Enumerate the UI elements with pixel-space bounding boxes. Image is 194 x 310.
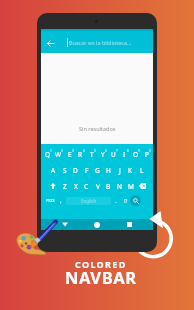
staticText: ?123 (46, 198, 55, 203)
staticText: English (81, 198, 97, 204)
staticText: X (74, 182, 78, 191)
button[interactable]: E (64, 148, 75, 160)
button[interactable]: Y (97, 148, 108, 160)
staticText: 4 (83, 149, 85, 153)
staticText: 0 (149, 149, 151, 153)
button[interactable]: Back (44, 37, 56, 49)
staticText: K (128, 166, 133, 175)
button[interactable]: R (75, 148, 86, 160)
button[interactable]: D (70, 164, 81, 176)
staticText: I (123, 150, 126, 159)
button[interactable]: G (92, 164, 103, 176)
staticText: 7 (116, 149, 118, 153)
staticText: D (73, 166, 78, 175)
staticText: S (63, 166, 67, 175)
staticText: R (78, 150, 83, 159)
staticText: L (140, 166, 144, 175)
staticText: V (96, 182, 100, 191)
staticText: H (106, 166, 111, 175)
staticText: 5 (94, 149, 96, 153)
staticText: O (133, 150, 139, 159)
staticText: 8 (127, 149, 129, 153)
staticText: 3 (72, 149, 74, 153)
staticText: U (111, 150, 116, 159)
staticText: P (145, 150, 149, 159)
button[interactable]: . (111, 195, 121, 206)
button[interactable]: F (81, 164, 92, 176)
staticText: A (51, 166, 56, 175)
button[interactable]: P (141, 148, 152, 160)
button[interactable]: English (66, 197, 111, 205)
button[interactable]: A (48, 164, 59, 176)
button[interactable]: , (56, 195, 66, 206)
staticText: W (55, 150, 62, 159)
button[interactable]: C (81, 180, 92, 192)
staticText: Z (63, 182, 67, 191)
staticText: Buscar en la biblioteca... (69, 39, 132, 46)
staticText: !? (124, 198, 128, 204)
button[interactable]: Shift (47, 180, 59, 192)
button[interactable]: V (92, 180, 103, 192)
staticText: , (60, 197, 62, 205)
button[interactable]: Backspace (136, 180, 148, 192)
button[interactable]: Home (89, 219, 105, 230)
staticText: 6 (105, 149, 107, 153)
button[interactable]: T (86, 148, 97, 160)
button[interactable]: J (114, 164, 125, 176)
staticText: F (85, 166, 89, 175)
staticText: Y (101, 150, 105, 159)
button[interactable]: !? (121, 195, 130, 206)
staticText: M (128, 182, 134, 191)
button[interactable]: L (136, 164, 147, 176)
button[interactable]: U (108, 148, 119, 160)
button[interactable]: Search (130, 195, 141, 206)
staticText: Sin resultados (79, 125, 116, 132)
button[interactable]: N (114, 180, 125, 192)
button[interactable]: O (130, 148, 141, 160)
staticText: T (90, 150, 94, 159)
staticText: 2 (61, 149, 63, 153)
staticText: Q (45, 150, 51, 159)
staticText: 1 (50, 149, 52, 153)
other: Rotate (144, 208, 168, 232)
staticText: NAVBAR (65, 266, 137, 288)
staticText: E (68, 150, 72, 159)
button[interactable]: ?123 (44, 195, 56, 206)
staticText: J (119, 166, 121, 175)
button[interactable]: Back (57, 219, 73, 230)
staticText: C (84, 182, 89, 191)
button[interactable]: X (70, 180, 81, 192)
staticText: COLORED (75, 258, 127, 270)
staticText: B (106, 182, 111, 191)
staticText: N (117, 182, 122, 191)
button[interactable]: Z (59, 180, 70, 192)
button[interactable]: Q (42, 148, 53, 160)
staticText: . (115, 197, 117, 205)
button[interactable]: Recents (121, 219, 137, 230)
button[interactable]: I (119, 148, 130, 160)
button[interactable]: B (103, 180, 114, 192)
staticText: G (95, 166, 100, 175)
button[interactable]: S (59, 164, 70, 176)
button[interactable]: K (125, 164, 136, 176)
button[interactable]: H (103, 164, 114, 176)
staticText: 9 (138, 149, 140, 153)
button[interactable]: M (125, 180, 136, 192)
button[interactable]: W (53, 148, 64, 160)
